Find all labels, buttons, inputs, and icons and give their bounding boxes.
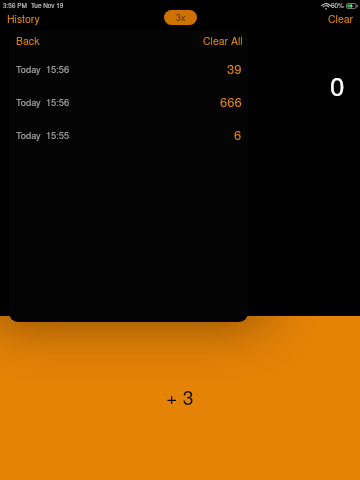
button[interactable]: + 3	[0, 316, 360, 480]
staticText: History	[7, 11, 40, 26]
staticText: Today 15:55	[16, 128, 70, 141]
staticText: Clear	[328, 11, 354, 26]
staticText: Back	[16, 33, 40, 48]
staticText: 60%	[331, 1, 344, 10]
staticText: 666	[220, 92, 242, 111]
staticText: Tue Nov 19	[31, 1, 64, 10]
staticText: 6	[234, 125, 242, 144]
staticText: Today 15:56	[16, 95, 70, 108]
staticText: 3x	[176, 11, 186, 24]
other: Wi-Fi	[323, 3, 329, 9]
staticText: Clear All	[203, 33, 243, 48]
button[interactable]: History	[7, 11, 40, 26]
staticText: + 3	[166, 383, 194, 411]
button[interactable]: 3x	[164, 10, 197, 25]
button[interactable]: Today 15:55	[9, 118, 248, 151]
button[interactable]: Back	[16, 33, 40, 48]
button[interactable]: Today 15:56	[9, 52, 248, 85]
staticText: 3:56 PM	[3, 1, 27, 10]
staticText: Today 15:56	[16, 62, 70, 75]
button[interactable]: Clear	[328, 11, 354, 26]
button[interactable]: Clear All	[203, 33, 243, 48]
other: Battery 60 percent	[346, 3, 358, 9]
staticText: 39	[227, 59, 242, 78]
staticText: 0	[330, 66, 345, 103]
button[interactable]: Today 15:56	[9, 85, 248, 118]
